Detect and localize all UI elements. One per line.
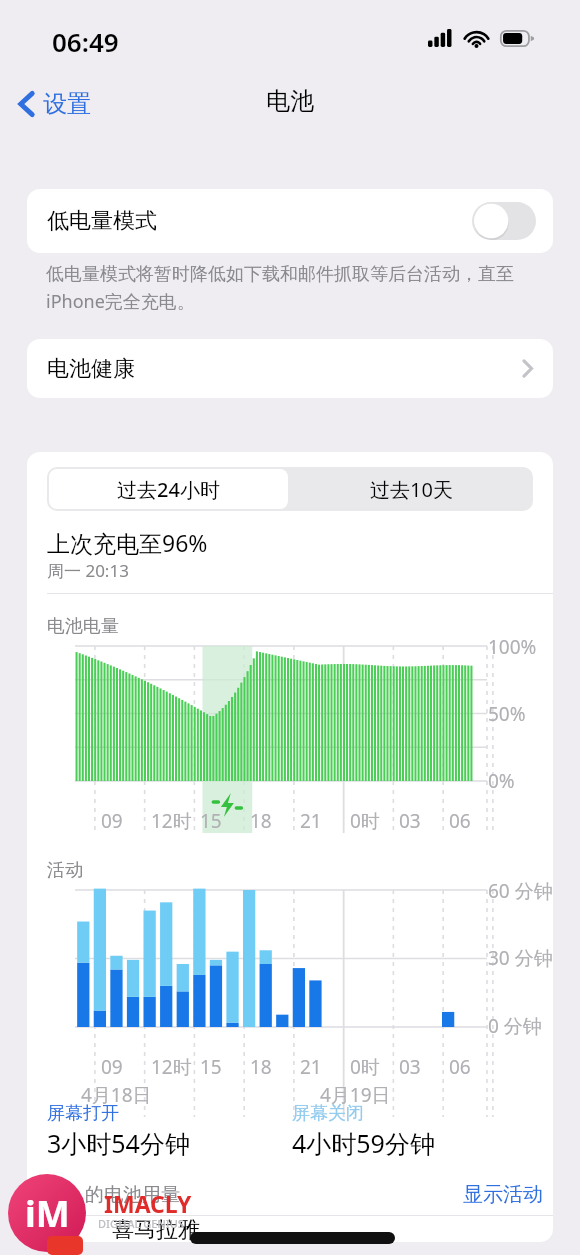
button[interactable]: 喜马拉雅 — [27, 1216, 553, 1242]
staticText: 0时 — [350, 808, 380, 834]
staticText: 15 — [200, 808, 222, 834]
staticText: 活动 — [47, 859, 83, 882]
staticText: 09 — [101, 808, 123, 834]
staticText: 03 — [399, 808, 421, 834]
staticText: 09 — [101, 1054, 123, 1080]
staticText: 18 — [250, 1054, 272, 1080]
staticText: 03 — [399, 1054, 421, 1080]
button[interactable]: 低电量模式 — [27, 189, 553, 253]
staticText: 4月19日 — [320, 1082, 391, 1108]
staticText: 60 分钟 — [488, 878, 553, 904]
staticText: 电池电量 — [47, 615, 119, 638]
staticText: 电池健康 — [47, 355, 135, 383]
staticText: 0 分钟 — [488, 1013, 542, 1039]
staticText: 屏幕打开 — [47, 1102, 119, 1125]
staticText: 4小时59分钟 — [292, 1126, 435, 1160]
button[interactable]: 设置 — [12, 84, 97, 124]
button[interactable]: 过去10天 — [290, 467, 533, 511]
staticText: 低电量模式将暂时降低如下载和邮件抓取等后台活动，直至 iPhone完全充电。 — [46, 263, 546, 314]
button[interactable]: 电池健康 — [27, 339, 553, 398]
staticText: 30 分钟 — [488, 945, 553, 971]
staticText: 15 — [200, 1054, 222, 1080]
staticText: 50% — [488, 701, 526, 727]
staticText: DIGITAL GENIUS — [98, 1216, 184, 1231]
staticText: 的电池用量 — [85, 1183, 180, 1207]
staticText: 21 — [300, 808, 322, 834]
staticText: 设置 — [43, 89, 91, 119]
staticText: 18 — [250, 808, 272, 834]
staticText: 低电量模式 — [47, 207, 157, 235]
button[interactable]: 过去24小时 — [49, 469, 288, 509]
staticText: 4月18日 — [81, 1082, 152, 1108]
staticText: 12时 — [151, 808, 192, 834]
staticText: 06:49 — [52, 24, 119, 59]
staticText: 屏幕关闭 — [292, 1102, 364, 1125]
staticText: 过去24小时 — [117, 476, 220, 503]
staticText: 周一 20:13 — [47, 559, 129, 582]
staticText: 0时 — [350, 1054, 380, 1080]
staticText: 06 — [449, 808, 471, 834]
button[interactable]: 低电量模式 开关 — [472, 202, 536, 240]
staticText: IMACLY — [104, 1188, 192, 1219]
staticText: 喜马拉雅 — [112, 1216, 200, 1242]
staticText: iM — [25, 1189, 70, 1238]
button[interactable]: 显示活动 — [463, 1182, 543, 1207]
staticText: 上次充电至96% — [47, 527, 208, 558]
staticText: 0% — [488, 768, 515, 794]
staticText: 12时 — [151, 1054, 192, 1080]
staticText: 电池 — [266, 86, 314, 116]
staticText: 100% — [488, 634, 537, 660]
staticText: 3小时54分钟 — [47, 1126, 190, 1160]
staticText: 06 — [449, 1054, 471, 1080]
staticText: 过去10天 — [370, 476, 453, 503]
staticText: 21 — [300, 1054, 322, 1080]
